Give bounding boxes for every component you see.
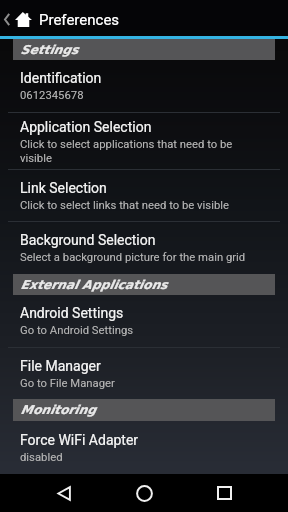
staticText: Settings — [21, 43, 79, 57]
staticText: External Applications — [21, 278, 168, 292]
button[interactable]: Recent apps — [184, 474, 264, 512]
button[interactable]: Identification — [0, 60, 288, 112]
staticText: Select a background picture for the main… — [20, 251, 246, 264]
button[interactable]: Home — [104, 474, 184, 512]
button[interactable]: File Manager — [0, 348, 288, 399]
staticText: Click to select links that need to be vi… — [20, 199, 229, 212]
staticText: Go to File Manager — [20, 377, 115, 390]
staticText: Application Selection — [20, 119, 152, 135]
staticText: Background Selection — [20, 232, 156, 248]
staticText: Android Settings — [20, 305, 124, 321]
staticText: Click to select applications that need t… — [20, 138, 252, 164]
staticText: Identification — [20, 70, 102, 86]
staticText: Link Selection — [20, 180, 107, 196]
staticText: Monitoring — [21, 403, 97, 417]
staticText: File Manager — [20, 358, 101, 374]
staticText: Preferences — [39, 11, 120, 29]
staticText: Go to Android Settings — [20, 324, 134, 337]
staticText: disabled — [20, 451, 63, 464]
staticText: Force WiFi Adapter — [20, 432, 139, 448]
button[interactable]: Background Selection — [0, 222, 288, 274]
button[interactable]: Application Selection — [0, 113, 288, 169]
button[interactable]: Navigate up to home — [0, 0, 36, 36]
staticText: 0612345678 — [20, 89, 84, 102]
button[interactable]: Android Settings — [0, 295, 288, 347]
button[interactable]: Link Selection — [0, 170, 288, 221]
button[interactable]: Force WiFi Adapter — [0, 421, 288, 475]
button[interactable]: Back — [24, 474, 104, 512]
